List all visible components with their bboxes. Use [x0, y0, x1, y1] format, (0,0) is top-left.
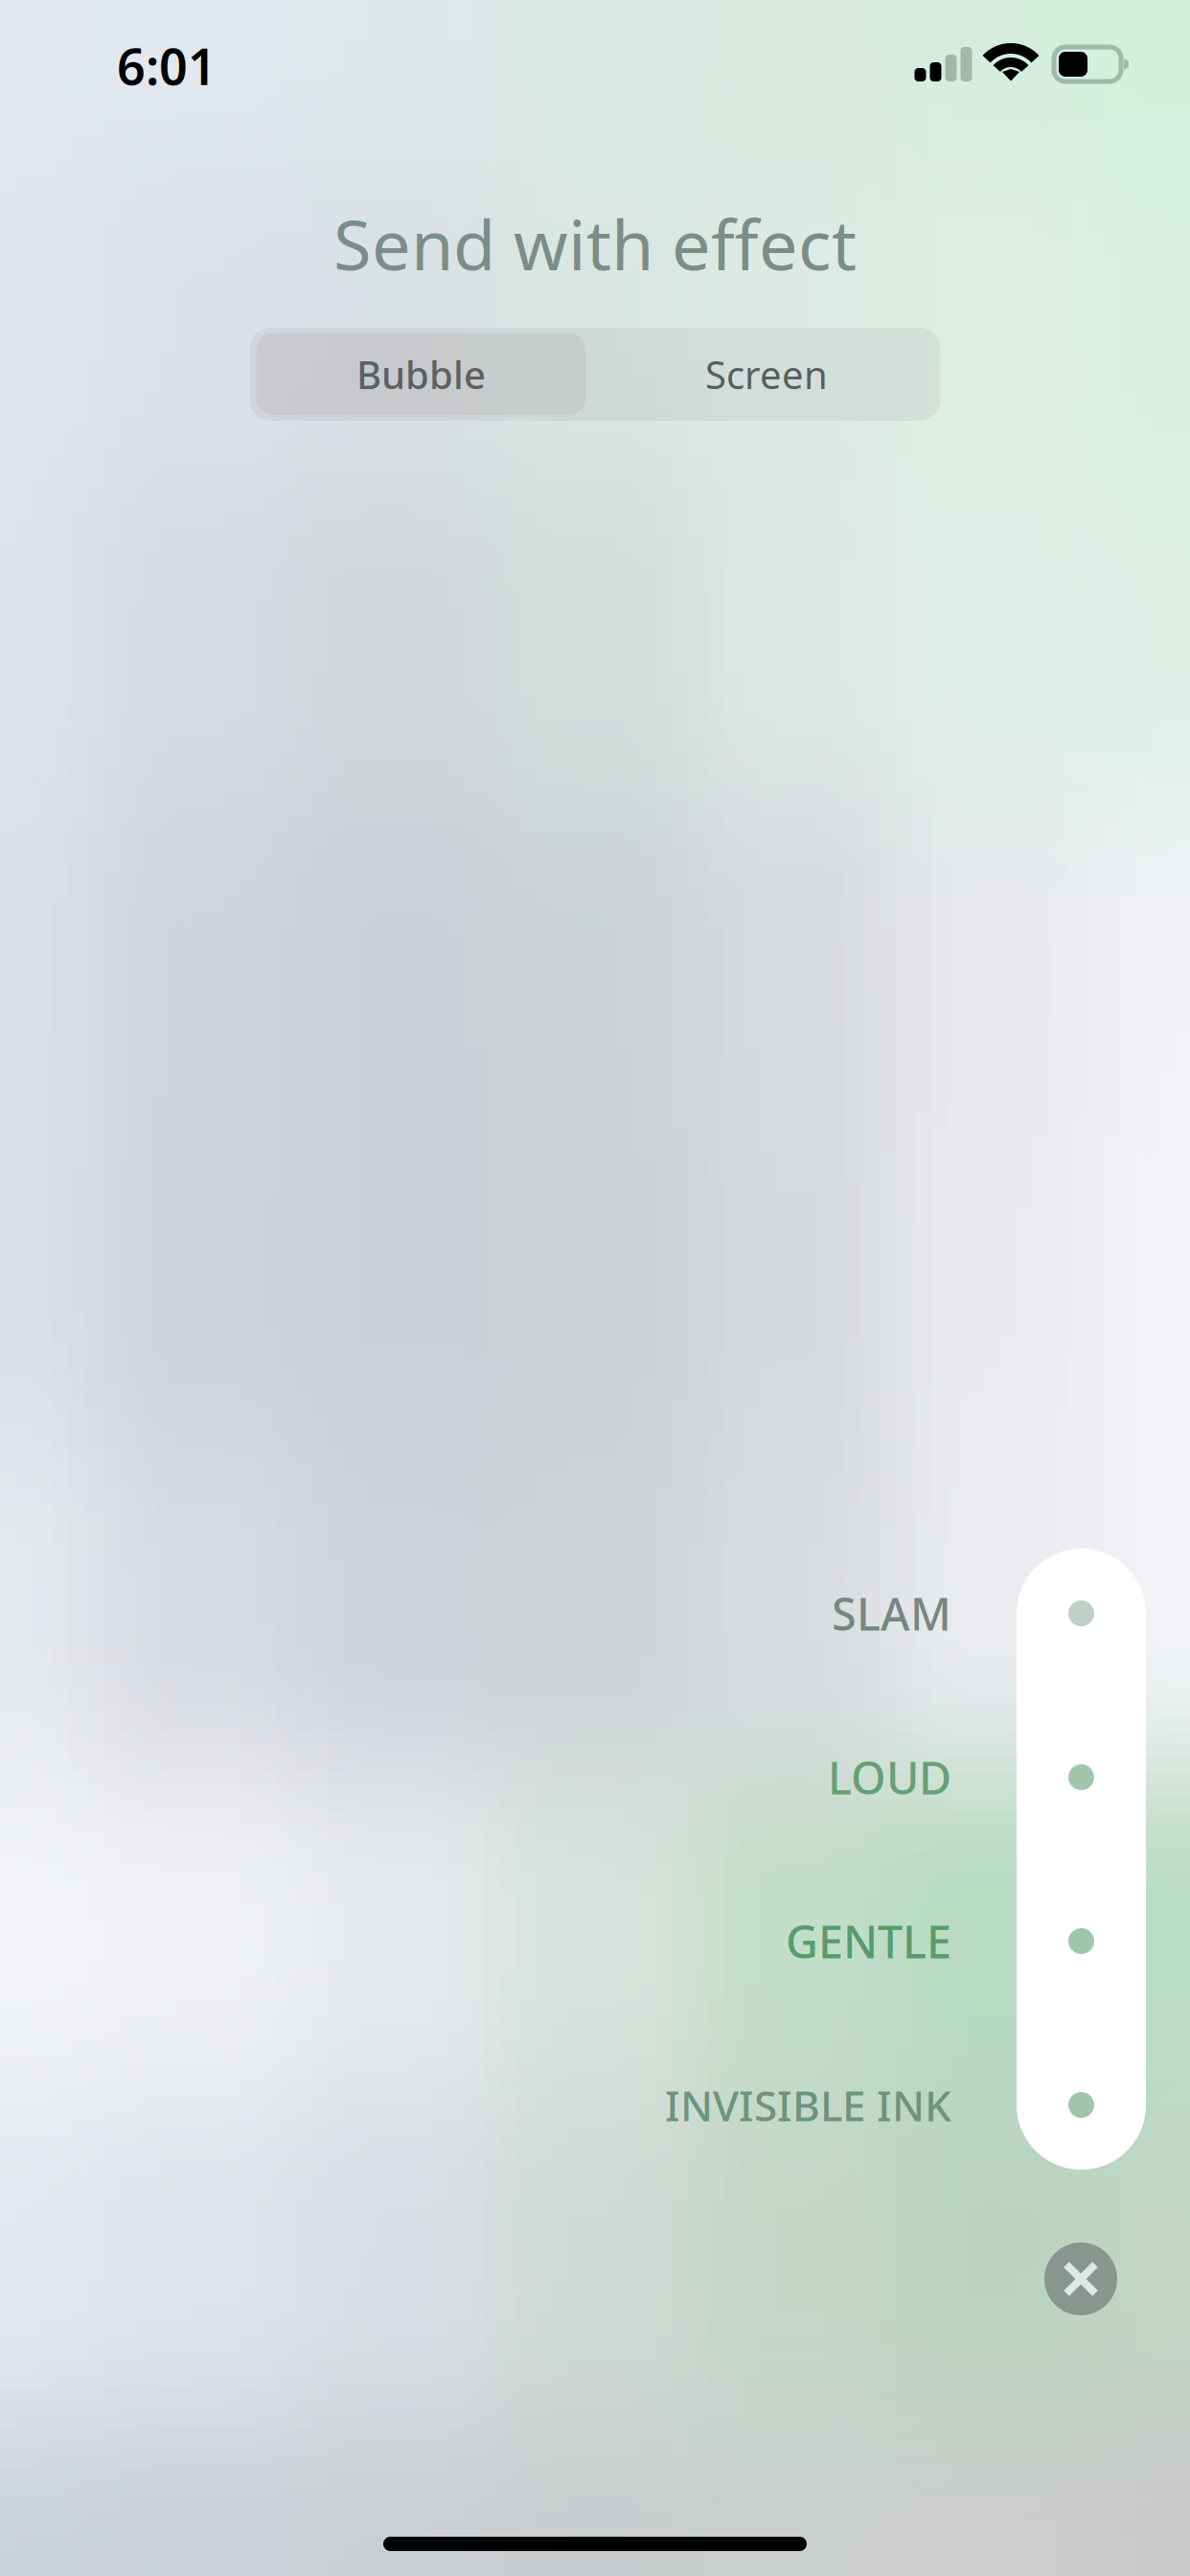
staticText: GENTLE — [786, 1911, 951, 1971]
staticText: Send with effect — [333, 198, 857, 289]
button[interactable]: GENTLE — [1017, 1859, 1146, 2023]
button[interactable]: Screen — [593, 328, 940, 421]
staticText: INVISIBLE INK — [665, 2077, 951, 2133]
staticText: LOUD — [828, 1748, 951, 1807]
staticText: Screen — [705, 349, 828, 400]
button[interactable]: INVISIBLE INK — [1017, 2023, 1146, 2187]
button[interactable]: LOUD — [1017, 1695, 1146, 1859]
button[interactable]: Bubble — [250, 328, 593, 421]
staticText: Bubble — [356, 349, 486, 400]
staticText: 6:01 — [117, 33, 217, 99]
button[interactable]: SLAM — [1017, 1531, 1146, 1695]
button[interactable]: Close — [1044, 2242, 1117, 2315]
staticText: SLAM — [832, 1584, 951, 1643]
